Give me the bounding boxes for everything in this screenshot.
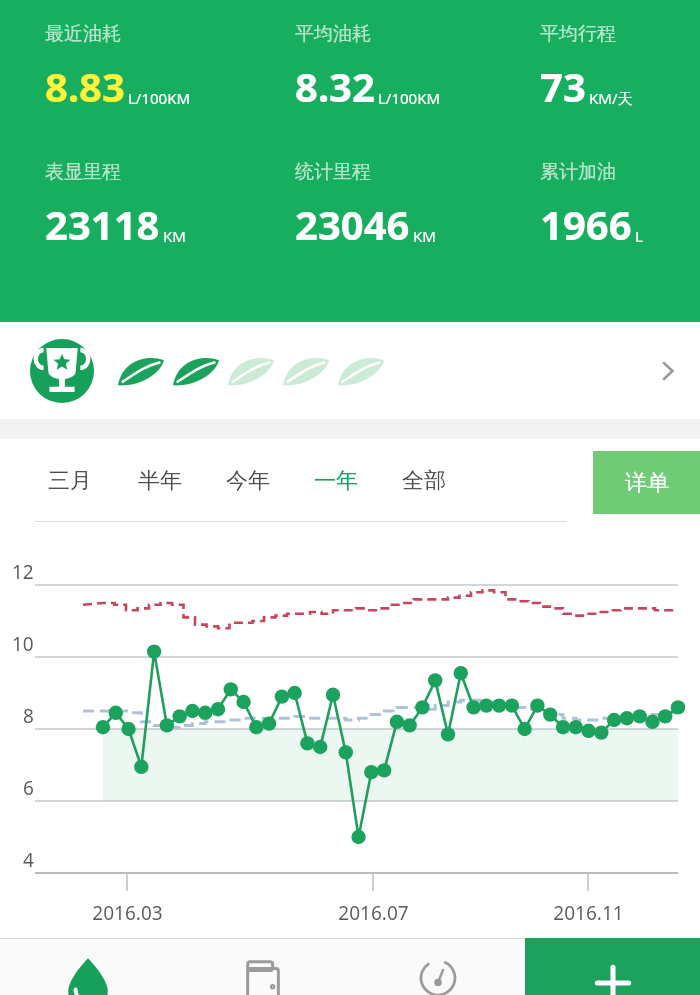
- staticText: KM: [163, 226, 186, 246]
- staticText: 2016.07: [338, 900, 409, 926]
- staticText: 23046: [295, 197, 410, 251]
- button[interactable]: 一年: [314, 439, 402, 522]
- button[interactable]: 半年: [138, 439, 226, 522]
- staticText: 平均行程: [540, 22, 616, 46]
- button[interactable]: 全部: [402, 439, 490, 522]
- button[interactable]: 详单: [593, 451, 700, 514]
- staticText: 累计加油: [540, 160, 616, 184]
- button[interactable]: Dashboard: [350, 938, 525, 995]
- staticText: 详单: [625, 469, 669, 497]
- staticText: L/100KM: [128, 88, 191, 108]
- button[interactable]: Add record: [525, 938, 700, 995]
- staticText: 23118: [45, 197, 160, 251]
- staticText: 今年: [226, 467, 270, 495]
- staticText: 表显里程: [45, 160, 121, 184]
- staticText: KM/天: [589, 88, 633, 108]
- staticText: 半年: [138, 467, 182, 495]
- staticText: L/100KM: [378, 88, 441, 108]
- staticText: 统计里程: [295, 160, 371, 184]
- staticText: 8.83: [45, 59, 125, 113]
- staticText: 全部: [402, 467, 446, 495]
- staticText: 一年: [314, 467, 358, 495]
- staticText: 平均油耗: [295, 22, 371, 46]
- staticText: 三月: [48, 467, 92, 495]
- button[interactable]: 今年: [226, 439, 314, 522]
- staticText: 12: [12, 559, 34, 585]
- staticText: 6: [23, 775, 34, 801]
- staticText: 4: [23, 847, 34, 873]
- staticText: 8: [23, 703, 34, 729]
- button[interactable]: Fuel: [0, 938, 175, 995]
- staticText: 8.32: [295, 59, 375, 113]
- staticText: L: [635, 226, 643, 246]
- staticText: 1966: [540, 197, 632, 251]
- staticText: 73: [540, 59, 586, 113]
- button[interactable]: More achievements: [0, 322, 700, 419]
- staticText: 2016.11: [553, 900, 624, 926]
- button[interactable]: Notes: [175, 938, 350, 995]
- staticText: KM: [413, 226, 436, 246]
- staticText: 2016.03: [92, 900, 163, 926]
- staticText: 10: [12, 631, 34, 657]
- other: More achievements: [636, 322, 700, 419]
- staticText: 最近油耗: [45, 22, 121, 46]
- button[interactable]: 三月: [48, 439, 138, 522]
